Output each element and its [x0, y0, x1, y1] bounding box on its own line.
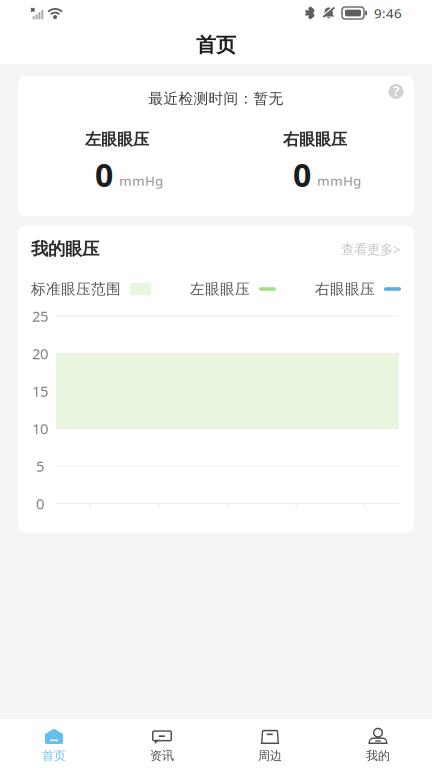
staticText: 查看更多> — [341, 240, 401, 258]
button[interactable]: 查看更多> — [341, 240, 401, 258]
staticText: 资讯 — [150, 748, 174, 763]
staticText: 我的眼压 — [31, 238, 99, 260]
staticText: 周边 — [258, 748, 282, 763]
button[interactable]: 帮助 — [384, 79, 408, 103]
staticText: mmHg — [317, 172, 361, 189]
staticText: 右眼眼压 — [283, 130, 347, 149]
staticText: ? — [393, 82, 399, 100]
staticText: 0 — [293, 153, 311, 196]
staticText: 首页 — [196, 33, 236, 57]
button[interactable]: 首页 — [0, 719, 108, 768]
staticText: 0 — [36, 494, 44, 513]
staticText: 左眼眼压 — [85, 130, 149, 149]
staticText: 15 — [32, 381, 48, 401]
staticText: 9:46 — [374, 4, 402, 22]
staticText: 25 — [32, 306, 48, 326]
staticText: 右眼眼压 — [315, 280, 375, 298]
staticText: mmHg — [119, 172, 163, 189]
staticText: 标准眼压范围 — [31, 280, 121, 298]
staticText: 0 — [95, 153, 113, 196]
staticText: 左眼眼压 — [190, 280, 250, 298]
staticText: 10 — [32, 419, 48, 438]
staticText: 20 — [32, 344, 48, 363]
button[interactable]: 我的 — [324, 719, 432, 768]
button[interactable]: 资讯 — [108, 719, 216, 768]
button[interactable]: 周边 — [216, 719, 324, 768]
staticText: 我的 — [366, 748, 390, 763]
staticText: 最近检测时间：暂无 — [148, 89, 283, 107]
staticText: 首页 — [42, 748, 66, 763]
staticText: 5 — [36, 456, 44, 476]
